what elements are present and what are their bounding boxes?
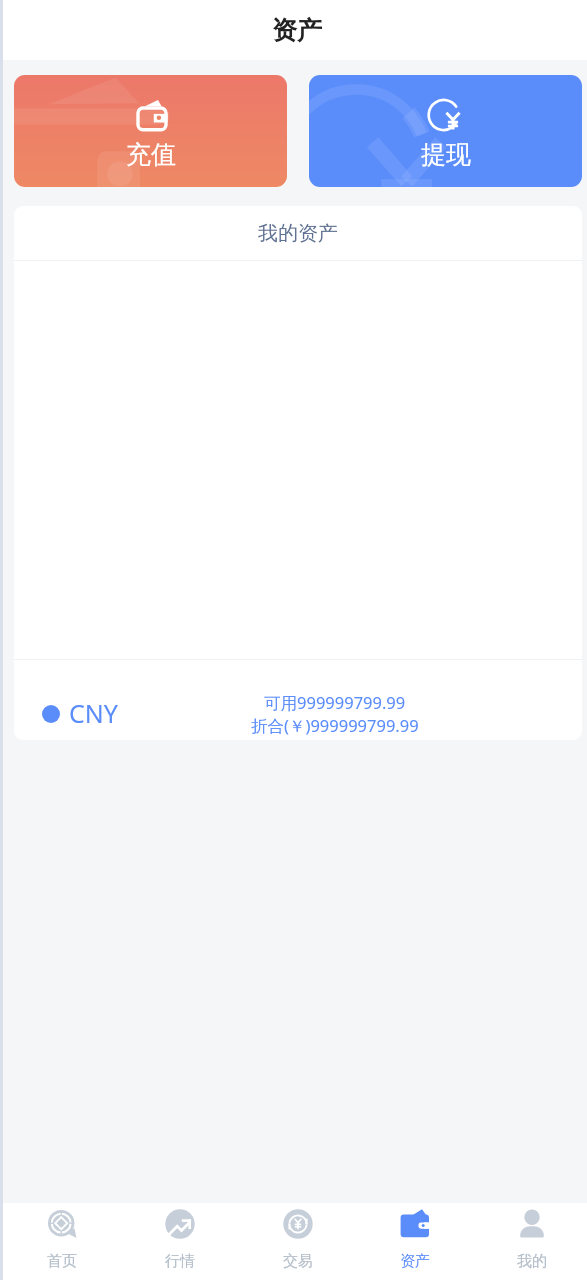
staticText: 我的资产 xyxy=(258,221,338,246)
staticText: 交易 xyxy=(283,1252,313,1271)
button[interactable]: 交易 xyxy=(239,1203,356,1280)
button[interactable]: 充值 Recharge xyxy=(14,75,287,187)
staticText: 我的 xyxy=(517,1252,547,1271)
button[interactable]: 首页 xyxy=(3,1203,121,1280)
button[interactable]: 资产 xyxy=(356,1203,473,1280)
staticText: 行情 xyxy=(165,1252,195,1271)
button[interactable]: 提现 Withdraw xyxy=(309,75,582,187)
staticText: CNY xyxy=(69,696,118,730)
staticText: 资产 xyxy=(272,15,322,46)
button[interactable]: 行情 xyxy=(121,1203,239,1280)
staticText: 折合(￥)999999799.99 xyxy=(251,714,419,737)
button[interactable]: CNY xyxy=(14,660,582,740)
button[interactable]: 我的 xyxy=(473,1203,587,1280)
staticText: 资产 xyxy=(400,1252,430,1271)
staticText: 提现 xyxy=(421,139,471,170)
staticText: 可用999999799.99 xyxy=(264,691,406,714)
staticText: 充值 xyxy=(126,139,176,170)
staticText: 首页 xyxy=(47,1252,77,1271)
